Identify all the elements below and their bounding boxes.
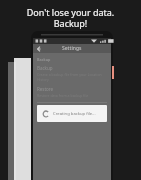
staticText: Map — [37, 106, 46, 111]
staticText: Don't lose your data. Backup! — [0, 6, 141, 29]
button[interactable]: Back — [36, 46, 42, 52]
staticText: Settings — [62, 45, 82, 52]
button[interactable]: Restore — [37, 86, 107, 98]
staticText: Restore — [37, 86, 54, 92]
button[interactable]: Creating backup file... — [37, 105, 107, 122]
button[interactable]: Backup — [37, 65, 107, 82]
staticText: Backup — [37, 57, 51, 62]
staticText: Backup — [37, 65, 53, 71]
button[interactable]: Map Type — [37, 114, 107, 120]
staticText: Map Type — [37, 114, 93, 120]
staticText: Creating backup file... — [53, 111, 96, 117]
button[interactable]: Back — [33, 44, 111, 53]
staticText: Restore data from a backup file — [37, 93, 89, 98]
